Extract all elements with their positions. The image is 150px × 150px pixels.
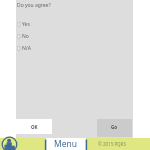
staticText: No [22, 33, 29, 40]
button[interactable]: Menu [46, 138, 86, 150]
staticText: Menu [54, 138, 78, 150]
button[interactable]: No [17, 33, 133, 40]
staticText: N/A [22, 45, 31, 52]
button[interactable]: Go [97, 119, 132, 137]
staticText: Do you agree? [17, 2, 51, 9]
button[interactable]: Yes [17, 21, 133, 28]
button[interactable]: Home [1, 136, 18, 150]
staticText: OK [31, 124, 38, 130]
staticText: © 2015 PQRS [98, 141, 126, 147]
staticText: Go [111, 124, 118, 130]
button[interactable]: OK [16, 119, 52, 134]
button[interactable]: N/A [17, 45, 133, 52]
staticText: Yes [22, 21, 30, 28]
